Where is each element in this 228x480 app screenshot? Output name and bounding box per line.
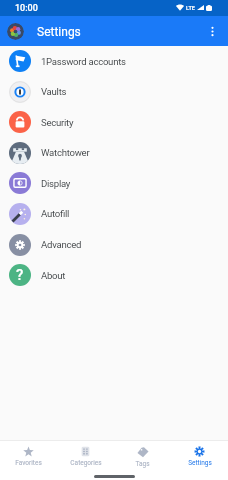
button[interactable]: Security bbox=[0, 107, 228, 137]
button[interactable]: Account bbox=[7, 23, 24, 40]
staticText: Watchtower bbox=[41, 147, 90, 158]
staticText: Favorites bbox=[15, 459, 42, 467]
button[interactable]: Display bbox=[0, 168, 228, 198]
staticText: 1Password accounts bbox=[41, 56, 126, 67]
button[interactable]: Watchtower bbox=[0, 137, 228, 168]
staticText: Security bbox=[41, 117, 74, 128]
button[interactable]: ? bbox=[0, 260, 228, 290]
button[interactable]: Tags bbox=[114, 441, 171, 472]
button[interactable]: Favorites bbox=[0, 441, 57, 472]
button[interactable]: Settings bbox=[171, 441, 228, 472]
button[interactable]: Vaults bbox=[0, 76, 228, 107]
staticText: ? bbox=[16, 266, 24, 284]
button[interactable]: 1Password accounts bbox=[0, 46, 228, 76]
staticText: Settings bbox=[188, 459, 212, 467]
button[interactable]: Advanced bbox=[0, 229, 228, 260]
button[interactable]: More options bbox=[199, 18, 225, 44]
button[interactable]: Categories bbox=[57, 441, 114, 472]
staticText: 10:00 bbox=[15, 3, 38, 14]
staticText: Tags bbox=[135, 460, 150, 468]
staticText: Vaults bbox=[41, 86, 67, 97]
button[interactable]: Autofill bbox=[0, 198, 228, 229]
staticText: Categories bbox=[70, 459, 102, 467]
staticText: LTE bbox=[186, 5, 195, 11]
staticText: Display bbox=[41, 178, 71, 189]
staticText: About bbox=[41, 270, 66, 281]
staticText: Autofill bbox=[41, 208, 70, 219]
staticText: Advanced bbox=[41, 239, 82, 250]
staticText: Settings bbox=[37, 25, 81, 39]
